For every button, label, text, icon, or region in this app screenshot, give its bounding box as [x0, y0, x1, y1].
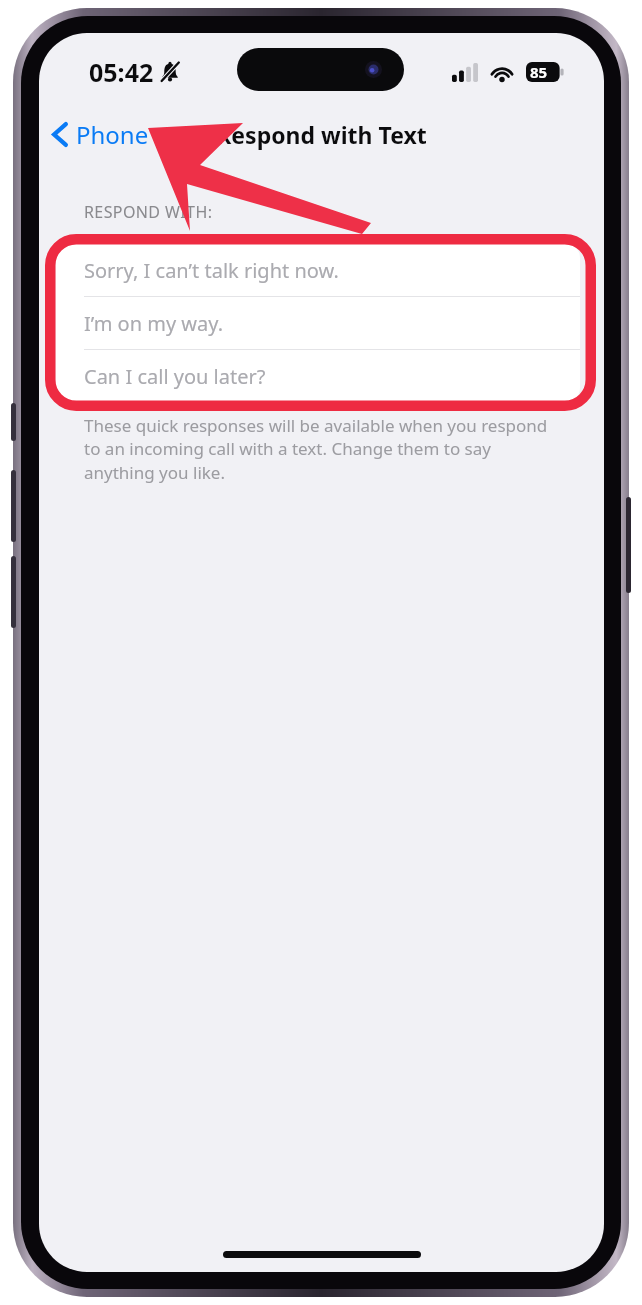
staticText: These quick responses will be available …: [84, 414, 556, 484]
staticText: Sorry, I can’t talk right now.: [84, 257, 339, 284]
staticText: Can I call you later?: [84, 363, 266, 390]
staticText: Respond with Text: [216, 119, 427, 150]
other: Silent mode: [159, 61, 181, 83]
button[interactable]: Can I call you later?: [56, 350, 580, 402]
staticText: 85: [530, 62, 548, 82]
staticText: Phone: [76, 118, 149, 151]
button[interactable]: I’m on my way.: [56, 297, 580, 350]
staticText: I’m on my way.: [84, 310, 224, 337]
button[interactable]: Sorry, I can’t talk right now.: [56, 244, 580, 297]
button[interactable]: Phone: [47, 112, 153, 157]
staticText: RESPOND WITH:: [84, 201, 213, 223]
staticText: 05:42: [89, 55, 154, 89]
